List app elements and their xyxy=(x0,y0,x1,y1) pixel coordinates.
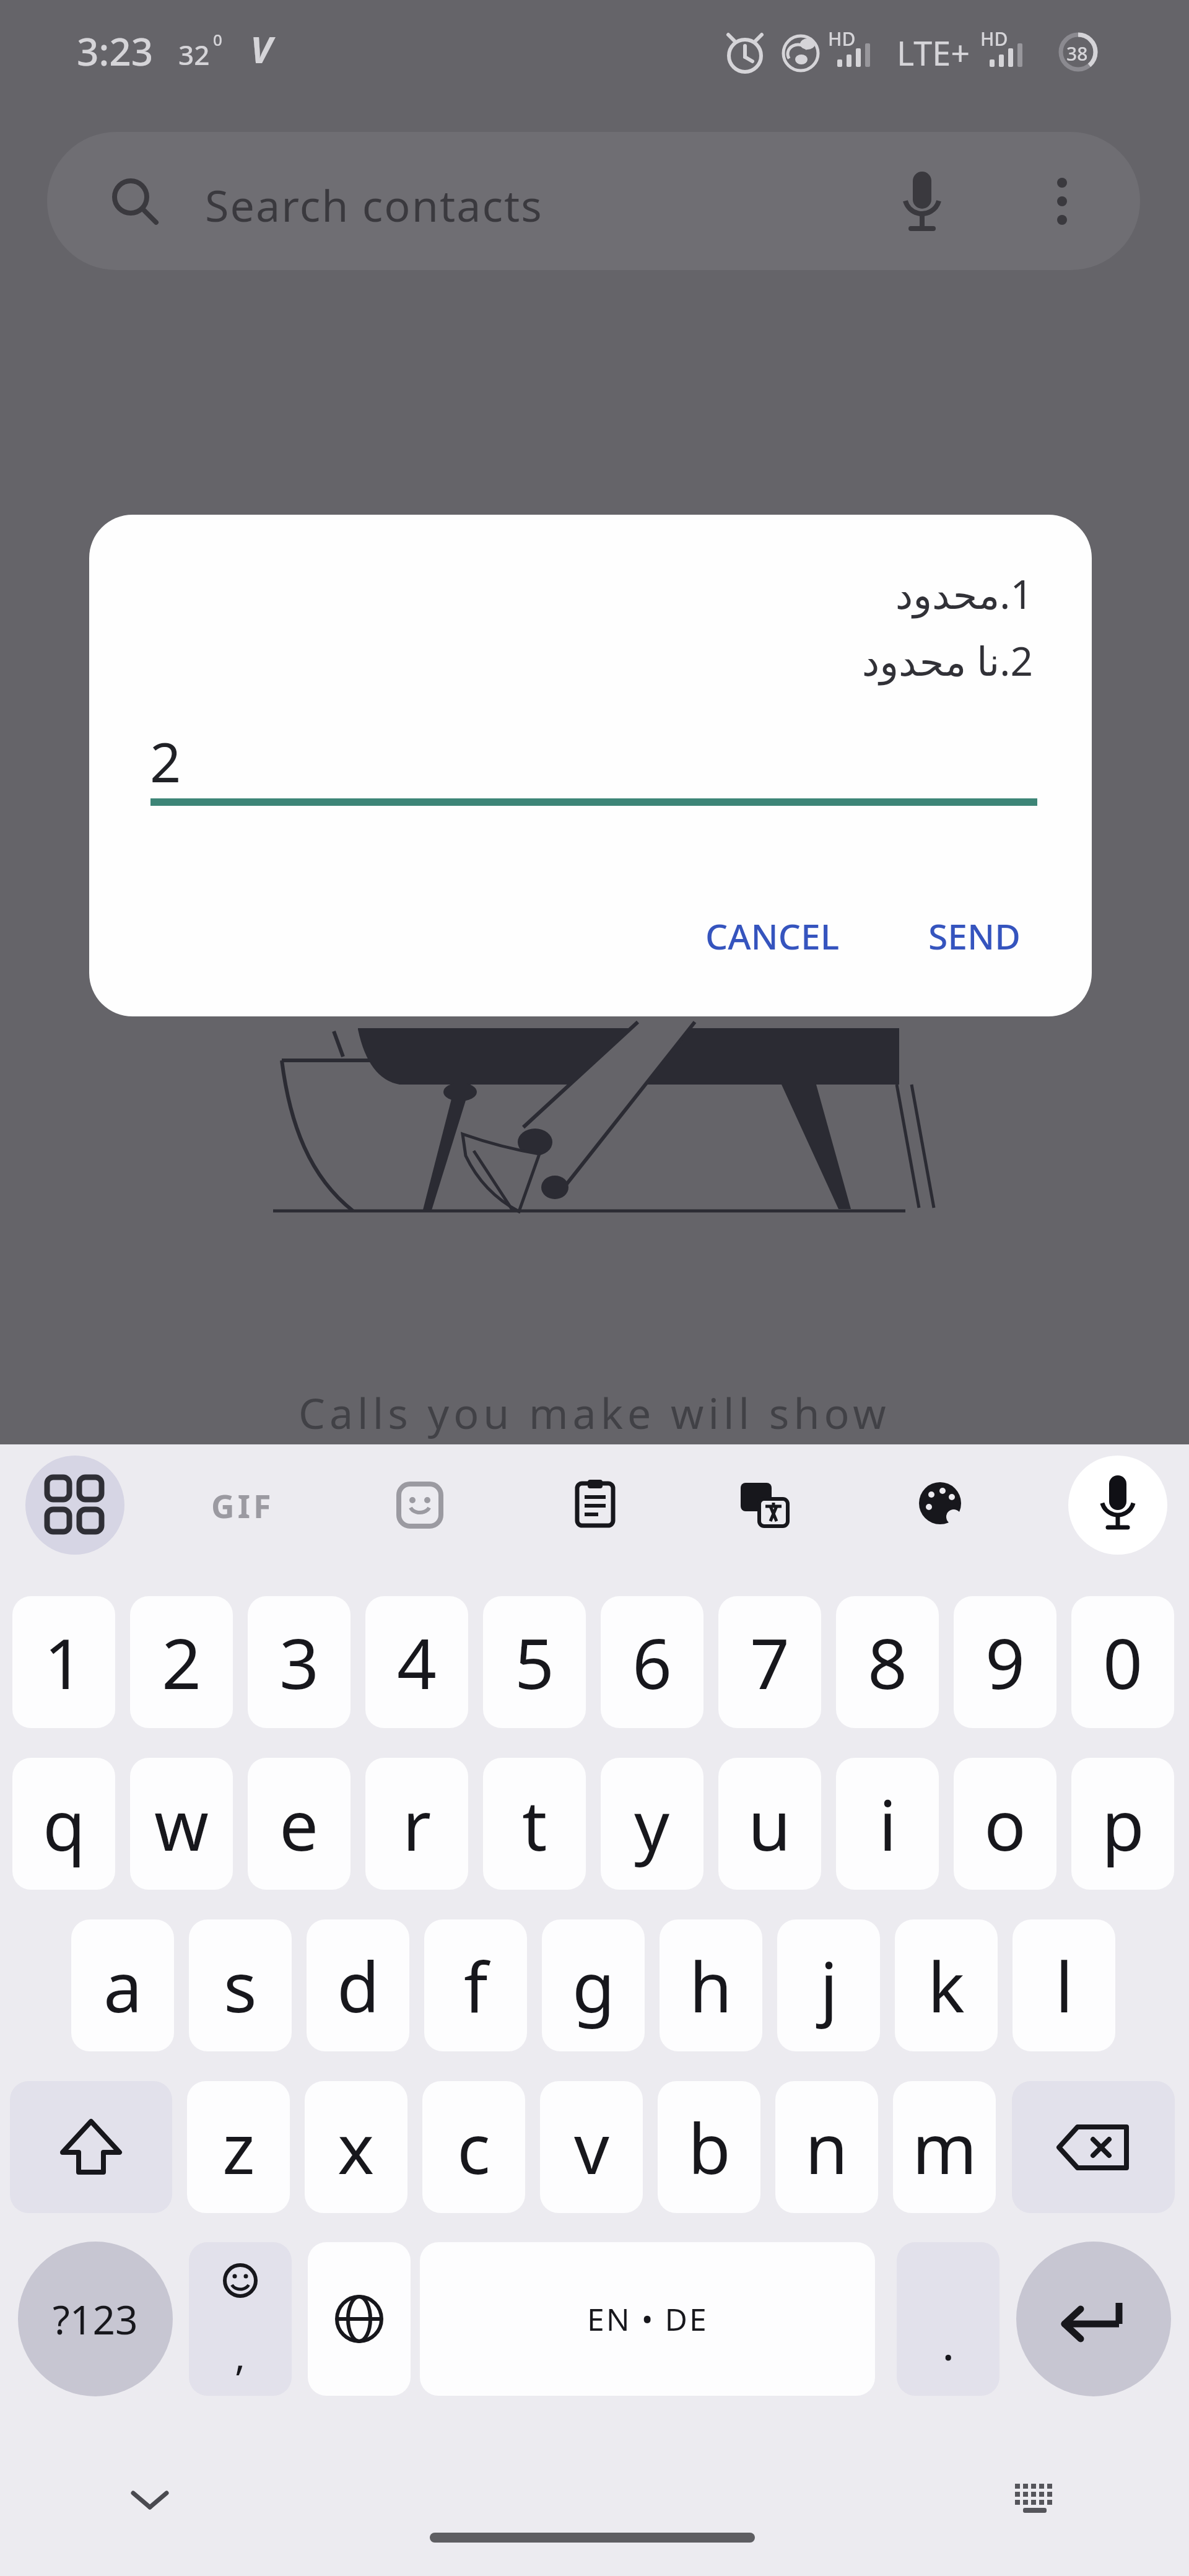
button[interactable]: m xyxy=(893,2081,996,2213)
staticText: 0 xyxy=(1103,1615,1143,1709)
staticText: CANCEL xyxy=(705,912,840,960)
button[interactable]: h xyxy=(660,1919,762,2051)
button[interactable]: 0 xyxy=(1071,1596,1174,1728)
button[interactable]: Search contacts xyxy=(47,132,1140,270)
button[interactable]: s xyxy=(189,1919,292,2051)
button[interactable]: q xyxy=(12,1758,115,1890)
button[interactable] xyxy=(150,798,1037,806)
button[interactable]: b xyxy=(658,2081,760,2213)
staticText: V xyxy=(250,24,272,74)
button[interactable]: p xyxy=(1071,1758,1174,1890)
button[interactable]: v xyxy=(540,2081,643,2213)
staticText: 7 xyxy=(750,1615,790,1709)
button[interactable] xyxy=(308,2242,411,2396)
button[interactable]: d xyxy=(307,1919,409,2051)
button[interactable] xyxy=(1068,1456,1167,1555)
button[interactable] xyxy=(734,1474,796,1536)
staticText: b xyxy=(688,2100,731,2194)
button[interactable]: j xyxy=(777,1919,880,2051)
button[interactable]: 4 xyxy=(365,1596,468,1728)
staticText: n xyxy=(805,2100,848,2194)
staticText: g xyxy=(572,1938,615,2033)
staticText: GIF xyxy=(211,1483,274,1527)
button[interactable]: EN • DE xyxy=(420,2242,875,2396)
staticText: 3 xyxy=(279,1615,320,1709)
staticText: ?123 xyxy=(53,2292,138,2346)
button[interactable]: 9 xyxy=(954,1596,1056,1728)
button[interactable]: 8 xyxy=(836,1596,939,1728)
button[interactable]: e xyxy=(248,1758,351,1890)
button[interactable]: 7 xyxy=(718,1596,821,1728)
button[interactable]: t xyxy=(483,1758,586,1890)
button[interactable]: c xyxy=(422,2081,525,2213)
staticText: h xyxy=(689,1938,733,2033)
staticText: w xyxy=(154,1776,209,1871)
button[interactable] xyxy=(564,1472,626,1534)
staticText: , xyxy=(235,2328,246,2382)
button[interactable]: , xyxy=(189,2242,292,2396)
staticText: k xyxy=(928,1938,965,2033)
staticText: 2 xyxy=(150,724,181,798)
staticText: 38 xyxy=(1066,41,1088,66)
button[interactable] xyxy=(10,2081,172,2213)
staticText: 9 xyxy=(985,1615,1026,1709)
button[interactable]: o xyxy=(954,1758,1056,1890)
button[interactable]: k xyxy=(895,1919,998,2051)
button[interactable] xyxy=(389,1474,451,1536)
button[interactable]: x xyxy=(305,2081,407,2213)
staticText: HD xyxy=(828,26,856,51)
staticText: x xyxy=(338,2100,375,2194)
button[interactable] xyxy=(1016,2242,1171,2396)
staticText: s xyxy=(224,1938,257,2033)
staticText: 32 xyxy=(178,36,210,73)
button[interactable]: z xyxy=(187,2081,290,2213)
button[interactable]: 3 xyxy=(248,1596,351,1728)
button[interactable]: l xyxy=(1013,1919,1115,2051)
staticText: z xyxy=(222,2100,255,2194)
staticText: e xyxy=(279,1776,319,1871)
button[interactable] xyxy=(1012,2081,1175,2213)
staticText: HD xyxy=(980,26,1008,51)
staticText: c xyxy=(457,2100,490,2194)
button[interactable]: 6 xyxy=(601,1596,703,1728)
button[interactable]: g xyxy=(542,1919,645,2051)
staticText: 8 xyxy=(868,1615,908,1709)
button[interactable]: GIF xyxy=(199,1482,286,1529)
staticText: 4 xyxy=(397,1615,437,1709)
staticText: q xyxy=(43,1776,85,1871)
button[interactable]: i xyxy=(836,1758,939,1890)
staticText: a xyxy=(103,1938,142,2033)
staticText: v xyxy=(574,2100,609,2194)
staticText: l xyxy=(1055,1938,1073,2033)
staticText: 0 xyxy=(213,28,222,50)
button[interactable]: n xyxy=(775,2081,878,2213)
staticText: 5 xyxy=(515,1615,555,1709)
staticText: i xyxy=(879,1776,897,1871)
button[interactable]: y xyxy=(601,1758,703,1890)
staticText: y xyxy=(634,1776,670,1871)
button[interactable]: . xyxy=(897,2242,1000,2396)
button[interactable] xyxy=(25,1456,124,1555)
staticText: 2 xyxy=(162,1615,202,1709)
button[interactable]: CANCEL xyxy=(698,905,847,967)
button[interactable]: w xyxy=(130,1758,233,1890)
button[interactable]: 5 xyxy=(483,1596,586,1728)
staticText: d xyxy=(337,1938,380,2033)
button[interactable]: ?123 xyxy=(18,2242,173,2396)
button[interactable]: SEND xyxy=(909,905,1039,967)
button[interactable] xyxy=(909,1472,971,1534)
button[interactable]: a xyxy=(71,1919,174,2051)
button[interactable]: r xyxy=(365,1758,468,1890)
staticText: r xyxy=(403,1776,432,1871)
staticText: 1.محدود 2.نا محدود xyxy=(861,567,1033,687)
staticText: t xyxy=(522,1776,547,1871)
button[interactable]: 2 xyxy=(130,1596,233,1728)
button[interactable]: 1 xyxy=(12,1596,115,1728)
staticText: m xyxy=(912,2100,977,2194)
button[interactable]: f xyxy=(424,1919,527,2051)
staticText: . xyxy=(943,2315,954,2373)
staticText: LTE+ xyxy=(897,30,970,76)
staticText: 6 xyxy=(632,1615,673,1709)
button[interactable]: u xyxy=(718,1758,821,1890)
staticText: u xyxy=(748,1776,791,1871)
